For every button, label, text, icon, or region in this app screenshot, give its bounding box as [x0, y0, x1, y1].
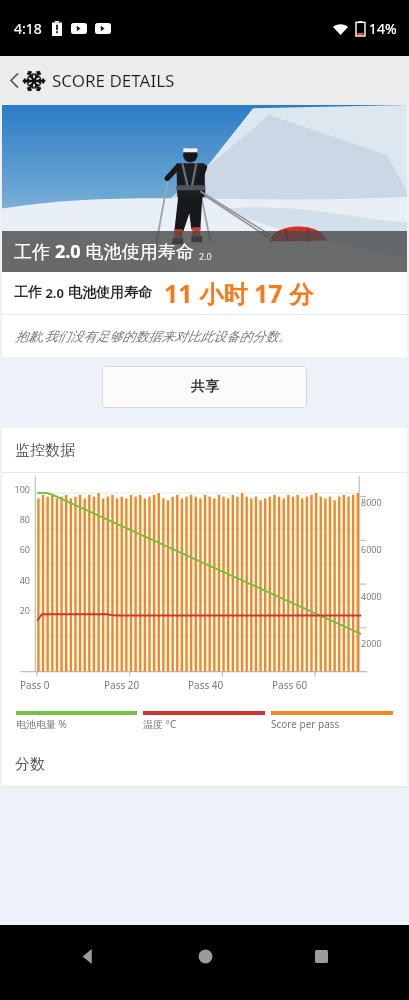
staticText: 温度 °C	[143, 717, 177, 731]
button[interactable]: Recent apps	[292, 939, 350, 973]
staticText: 40	[2, 574, 30, 586]
button[interactable]: 共享	[102, 366, 307, 408]
staticText: 分	[283, 277, 314, 310]
staticText: 17	[254, 276, 283, 310]
button[interactable]: Back	[59, 939, 117, 973]
staticText: 共享	[191, 378, 219, 396]
staticText: 4:18	[14, 19, 42, 38]
staticText: 20	[2, 604, 30, 616]
staticText: Pass 60	[272, 678, 308, 692]
staticText: 80	[2, 513, 30, 525]
staticText: 电池使用寿命	[68, 284, 152, 302]
staticText: Pass 0	[20, 678, 50, 692]
staticText: 小时	[193, 277, 254, 310]
staticText: 监控数据	[15, 441, 75, 460]
button[interactable]: Home	[176, 939, 234, 973]
staticText: 电池使用寿命	[81, 239, 194, 264]
staticText: Pass 40	[188, 678, 224, 692]
staticText: Score per pass	[271, 717, 340, 731]
staticText: SCORE DETAILS	[52, 69, 175, 92]
staticText: 工作	[14, 284, 42, 302]
staticText: 11	[164, 276, 193, 310]
staticText: 2.0	[42, 284, 68, 302]
staticText: 分数	[15, 755, 45, 774]
staticText: 2000	[361, 637, 382, 649]
staticText: 100	[2, 483, 30, 495]
staticText: 电池电量 %	[16, 717, 67, 731]
staticText: 工作	[14, 239, 55, 264]
staticText: 2.0	[55, 239, 81, 264]
staticText: 60	[2, 543, 30, 555]
staticText: Pass 20	[104, 678, 140, 692]
staticText: 2.0	[199, 250, 212, 262]
staticText: 抱歉,我们没有足够的数据来对比此设备的分数。	[15, 327, 292, 345]
button[interactable]: Back	[7, 69, 177, 92]
staticText: 14%	[369, 19, 397, 38]
staticText: 8000	[361, 496, 382, 508]
staticText: 4000	[361, 590, 382, 602]
staticText: 6000	[361, 543, 382, 555]
